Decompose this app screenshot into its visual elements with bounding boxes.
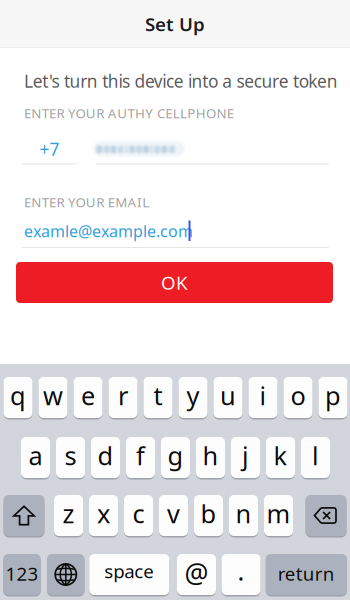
button[interactable]: Set Up — [145, 12, 205, 36]
button[interactable]: h — [196, 436, 225, 479]
staticText: y — [186, 379, 199, 412]
staticText: space — [104, 559, 154, 583]
staticText: return — [278, 561, 335, 586]
staticText: a — [28, 439, 42, 472]
button[interactable]: Delete — [0, 0, 350, 600]
staticText: 123 — [6, 561, 39, 586]
button[interactable]: a — [21, 436, 50, 479]
staticText: q — [10, 379, 26, 412]
staticText: . — [237, 554, 244, 588]
staticText: i — [259, 379, 266, 412]
staticText: Set Up — [145, 12, 205, 36]
staticText: ENTER YOUR AUTHY CELLPHONE — [24, 104, 234, 122]
staticText: ENTER YOUR EMAIL — [24, 193, 149, 211]
button[interactable]: e — [73, 376, 102, 419]
staticText: j — [242, 439, 249, 472]
button[interactable]: o — [283, 376, 312, 419]
staticText: w — [43, 379, 63, 412]
staticText: d — [97, 439, 113, 472]
button[interactable]: OK — [16, 262, 333, 303]
button[interactable]: space — [89, 553, 169, 596]
button[interactable]: v — [159, 494, 188, 537]
button[interactable]: d — [91, 436, 120, 479]
button[interactable]: l — [301, 436, 330, 479]
button[interactable]: x — [89, 494, 118, 537]
button[interactable]: 123 — [3, 553, 41, 596]
staticText: examle@example.com — [24, 220, 193, 242]
button[interactable]: f — [126, 436, 155, 479]
button[interactable]: b — [194, 494, 223, 537]
staticText: Let's turn this device into a secure tok… — [24, 69, 338, 92]
staticText: t — [153, 379, 162, 412]
button[interactable]: j — [231, 436, 260, 479]
button[interactable]: u — [213, 376, 242, 419]
staticText: f — [136, 439, 145, 472]
button[interactable]: t — [143, 376, 172, 419]
button[interactable]: q — [3, 376, 32, 419]
staticText: k — [273, 439, 287, 472]
button[interactable]: return — [266, 553, 347, 596]
button[interactable]: m — [264, 494, 293, 537]
button[interactable]: p — [318, 376, 347, 419]
staticText: +7 — [39, 137, 59, 160]
button[interactable]: c — [124, 494, 153, 537]
button[interactable]: g — [161, 436, 190, 479]
button[interactable]: . — [221, 553, 260, 596]
staticText: b — [200, 497, 216, 530]
staticText: g — [167, 439, 183, 472]
staticText: v — [167, 497, 180, 530]
staticText: n — [235, 497, 251, 530]
button[interactable]: n — [229, 494, 258, 537]
staticText: o — [290, 379, 305, 412]
staticText: p — [325, 379, 341, 412]
staticText: c — [132, 497, 144, 530]
staticText: l — [312, 439, 319, 472]
staticText: OK — [161, 270, 188, 295]
staticText: e — [81, 379, 95, 412]
staticText: m — [266, 497, 290, 530]
staticText: z — [62, 497, 74, 530]
staticText: u — [220, 379, 236, 412]
button[interactable]: w — [38, 376, 67, 419]
staticText: @ — [184, 555, 208, 591]
button[interactable]: z — [54, 494, 83, 537]
staticText: h — [202, 439, 218, 472]
button[interactable]: r — [108, 376, 137, 419]
button[interactable]: k — [266, 436, 295, 479]
button[interactable]: y — [178, 376, 207, 419]
staticText: s — [64, 439, 76, 472]
staticText: r — [118, 379, 128, 412]
button[interactable]: @ — [177, 553, 216, 596]
button[interactable]: s — [56, 436, 85, 479]
button[interactable]: Next keyboard — [0, 0, 350, 600]
button[interactable]: Shift — [0, 0, 350, 600]
button[interactable]: i — [248, 376, 277, 419]
staticText: x — [97, 497, 110, 530]
